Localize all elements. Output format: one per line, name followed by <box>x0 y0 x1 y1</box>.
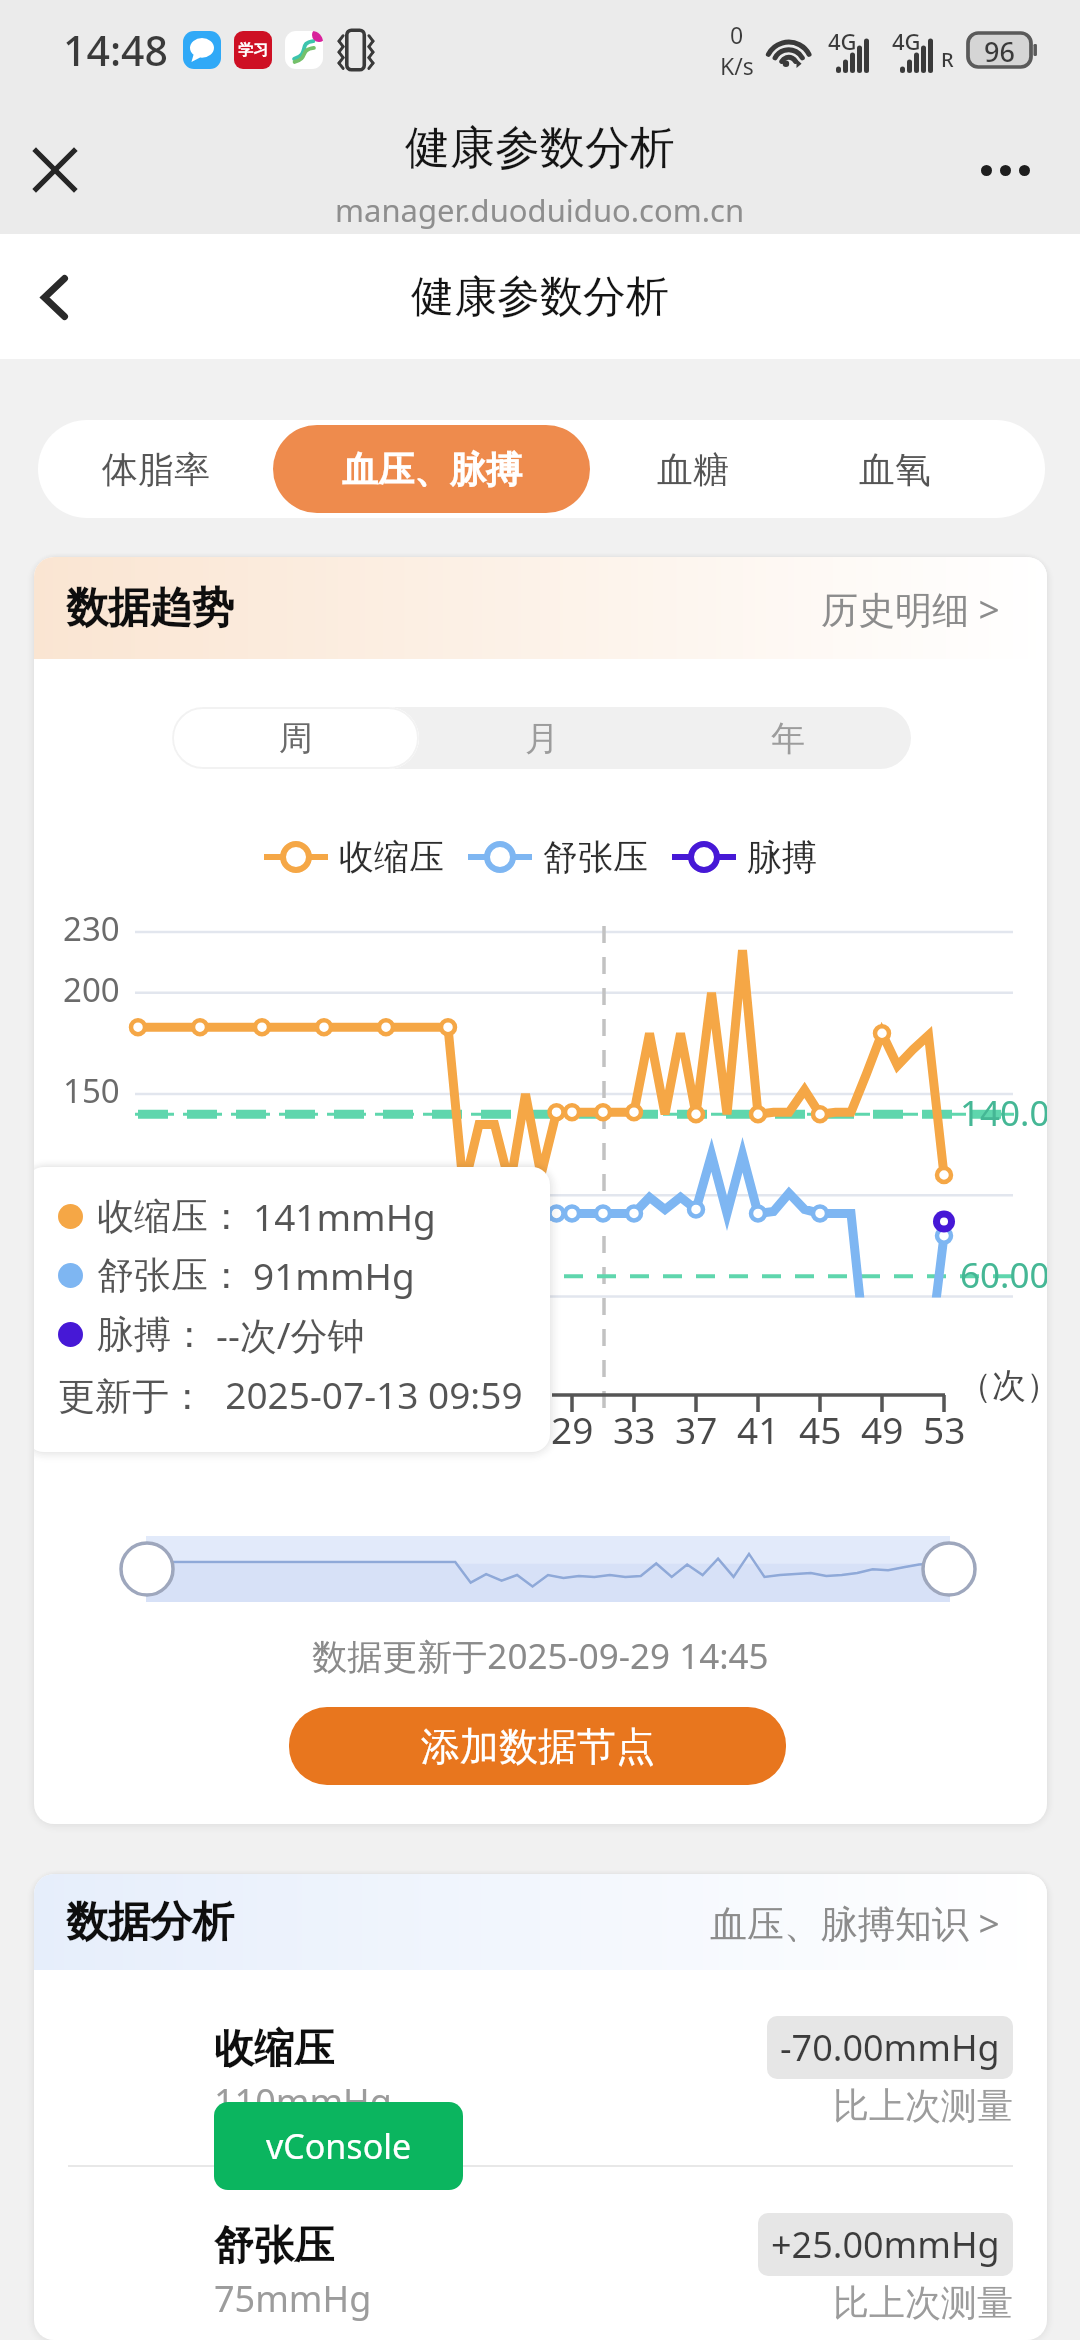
staticText: 血氧 <box>859 447 931 492</box>
staticText: 健康参数分析 <box>411 270 669 324</box>
staticText: 41 <box>737 1404 780 1454</box>
staticText: 血压、脉搏知识 > <box>710 1897 1000 1948</box>
button[interactable]: 血糖 <box>590 425 795 513</box>
staticText: 75mmHg <box>214 2274 372 2323</box>
staticText: 比上次测量 <box>833 2280 1013 2325</box>
button[interactable]: 添加数据节点 <box>289 1707 786 1785</box>
staticText: -70.00mmHg <box>780 2023 1000 2072</box>
staticText: 49 <box>861 1404 904 1454</box>
button[interactable]: 年 <box>665 707 911 769</box>
staticText: 数据更新于2025-09-29 14:45 <box>34 1632 1047 1680</box>
staticText: 数据趋势 <box>66 582 234 635</box>
staticText: manager.duoduiduo.com.cn <box>335 189 745 231</box>
staticText: 60.00 <box>960 1251 1047 1299</box>
staticText: 历史明细 > <box>821 583 1000 634</box>
staticText: 110mmHg <box>214 2077 392 2126</box>
staticText: 收缩压： <box>97 1193 245 1240</box>
button[interactable]: 历史明细 > <box>821 583 1000 634</box>
button[interactable]: 体脂率 <box>38 425 273 513</box>
staticText: 脉搏 <box>747 835 817 879</box>
button[interactable]: Close <box>12 127 98 213</box>
staticText: 体脂率 <box>102 447 210 492</box>
staticText: 添加数据节点 <box>421 1722 655 1771</box>
staticText: 0 <box>730 19 744 50</box>
staticText: 健康参数分析 <box>405 120 675 177</box>
staticText: 91mmHg <box>253 1250 415 1300</box>
staticText: 学习 <box>238 41 268 60</box>
button[interactable]: 收缩压 <box>34 1970 1047 2165</box>
staticText: 舒张压： <box>97 1252 245 1299</box>
staticText: 舒张压 <box>214 2220 334 2270</box>
staticText: 血压、脉搏 <box>342 447 522 492</box>
staticText: 37 <box>675 1404 718 1454</box>
button[interactable]: 血压、脉搏知识 > <box>710 1897 1000 1948</box>
staticText: 周 <box>279 717 313 760</box>
staticText: 33 <box>613 1404 656 1454</box>
staticText: 血糖 <box>657 447 729 492</box>
staticText: vConsole <box>266 2123 412 2169</box>
staticText: 脉搏： <box>97 1311 208 1358</box>
staticText: 150 <box>63 1068 120 1113</box>
staticText: K/s <box>720 50 754 81</box>
button[interactable]: 周 <box>172 707 419 769</box>
button[interactable]: 血氧 <box>795 425 995 513</box>
staticText: 4G <box>828 26 857 56</box>
button[interactable]: vConsole <box>214 2102 463 2190</box>
button[interactable]: More options <box>962 127 1048 213</box>
staticText: 4G <box>892 26 921 56</box>
staticText: 53 <box>923 1404 966 1454</box>
button[interactable]: 月 <box>419 707 665 769</box>
staticText: 230 <box>63 906 120 951</box>
staticText: +25.00mmHg <box>771 2220 1000 2269</box>
staticText: 29 <box>551 1404 594 1454</box>
button[interactable]: 舒张压 <box>34 2167 1047 2340</box>
staticText: （次） <box>958 1364 1047 1407</box>
staticText: 96 <box>984 33 1015 67</box>
staticText: 200 <box>63 967 120 1012</box>
staticText: 141mmHg <box>253 1191 436 1241</box>
staticText: 收缩压 <box>339 835 444 879</box>
staticText: 45 <box>799 1404 842 1454</box>
staticText: 年 <box>771 717 805 760</box>
button[interactable]: Back <box>14 257 94 337</box>
staticText: 收缩压 <box>214 2023 334 2073</box>
staticText: 数据分析 <box>66 1896 234 1949</box>
staticText: 舒张压 <box>543 835 648 879</box>
button[interactable]: 血压、脉搏 <box>273 425 590 513</box>
staticText: 140.00 <box>960 1089 1047 1137</box>
staticText: 14:48 <box>63 22 168 78</box>
staticText: --次/分钟 <box>216 1309 365 1360</box>
staticText: 更新于： 2025-07-13 09:59 <box>58 1369 523 1420</box>
staticText: 比上次测量 <box>833 2083 1013 2128</box>
staticText: R <box>941 46 954 73</box>
staticText: 月 <box>525 717 559 760</box>
